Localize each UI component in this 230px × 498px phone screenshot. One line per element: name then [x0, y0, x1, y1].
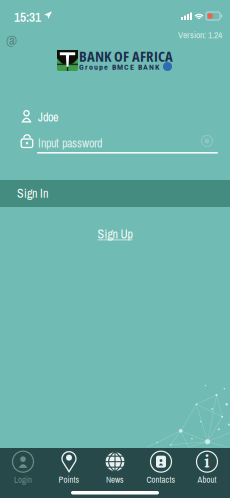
staticText: Sign Up: [97, 226, 132, 242]
staticText: Contacts: [146, 474, 175, 485]
staticText: 15:31: [14, 8, 41, 26]
button[interactable]: News: [92, 451, 138, 485]
staticText: Login: [14, 474, 32, 485]
staticText: Input password: [38, 135, 102, 151]
staticText: Sign In: [17, 185, 48, 202]
staticText: About: [197, 474, 216, 485]
button[interactable]: Points: [46, 451, 92, 485]
staticText: BANK OF AFRICA: [79, 46, 173, 66]
staticText: Points: [58, 474, 79, 485]
staticText: News: [106, 474, 124, 485]
button[interactable]: Sign In: [0, 180, 230, 207]
button[interactable]: i: [184, 451, 230, 485]
button[interactable]: Sign Up: [92, 221, 137, 247]
button[interactable]: Login: [0, 451, 46, 485]
staticText: @: [6, 31, 17, 49]
staticText: i: [204, 449, 210, 473]
staticText: Groupe BMCE BANK: [79, 62, 159, 72]
staticText: Version: 1.24: [178, 29, 222, 41]
staticText: Jdoe: [38, 109, 58, 125]
button[interactable]: Contacts: [138, 451, 184, 485]
